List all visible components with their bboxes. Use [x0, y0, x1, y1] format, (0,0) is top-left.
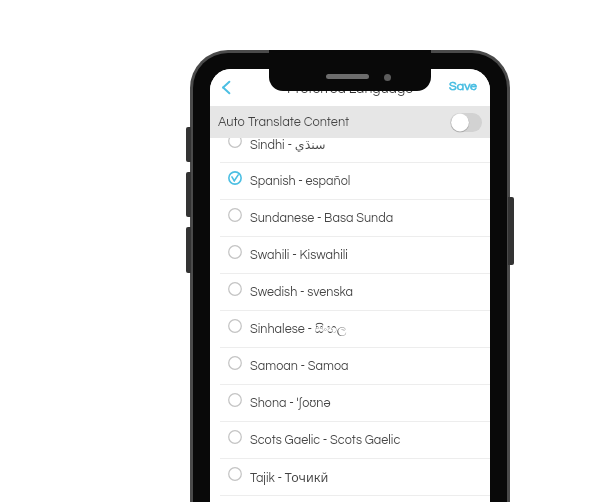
staticText: Preferred Language [287, 82, 414, 96]
button[interactable]: Sinhalese - සිංහල [210, 311, 490, 348]
staticText: Sinhalese - සිංහල [250, 323, 347, 336]
staticText: Scots Gaelic - Scots Gaelic [250, 434, 401, 447]
button[interactable]: Spanish - español [210, 163, 490, 200]
staticText: Swedish - svenska [250, 286, 354, 299]
staticText: Spanish - español [250, 175, 351, 188]
button[interactable]: Sundanese - Basa Sunda [210, 200, 490, 237]
button[interactable]: Save [449, 80, 478, 93]
staticText: Tajik - Точикй [250, 469, 329, 486]
staticText: Shona - ˈʃoʊnə [250, 397, 331, 410]
staticText: Swahili - Kiswahili [250, 249, 348, 262]
button[interactable]: Shona - ˈʃoʊnə [210, 385, 490, 422]
button[interactable]: Swahili - Kiswahili [210, 237, 490, 274]
button[interactable]: Swedish - svenska [210, 274, 490, 311]
staticText: Auto Translate Content [218, 116, 350, 129]
button[interactable]: Sindhi - سنڌي [210, 126, 490, 163]
button[interactable]: Tajik - Точикй [210, 459, 490, 496]
button[interactable]: Back [213, 74, 239, 100]
staticText: Save [449, 80, 478, 93]
button[interactable]: Samoan - Samoa [210, 348, 490, 385]
button[interactable]: Scots Gaelic - Scots Gaelic [210, 422, 490, 459]
button[interactable]: Auto Translate Content [210, 106, 490, 138]
staticText: Sindhi - سنڌي [250, 137, 326, 152]
staticText: Sundanese - Basa Sunda [250, 212, 394, 225]
staticText: Samoan - Samoa [250, 360, 349, 373]
